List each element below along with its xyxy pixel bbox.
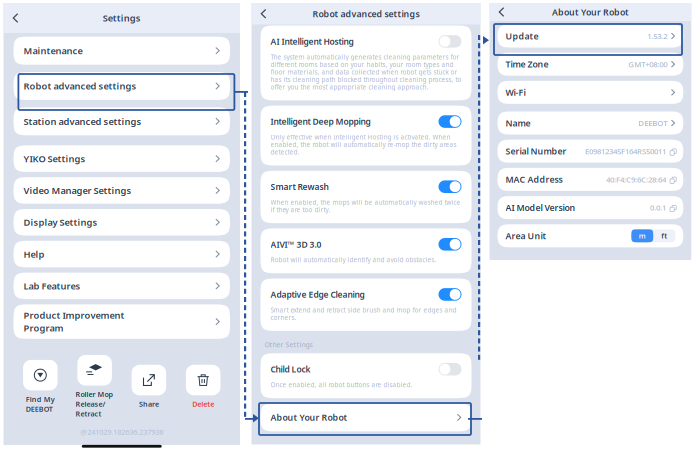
- button[interactable]: Child Lock: [438, 363, 461, 375]
- staticText: E09812345F164RS50011: [585, 146, 666, 156]
- staticText: AI Model Version: [505, 202, 575, 214]
- staticText: MAC Address: [505, 173, 562, 185]
- button[interactable]: Lab Features: [13, 273, 230, 299]
- staticText: DEEBOT: [638, 118, 667, 128]
- staticText: 40:F4:C9:6C:28:64: [606, 174, 666, 185]
- button[interactable]: Intelligent Deep Mopping: [438, 115, 461, 128]
- button[interactable]: Time Zone: [497, 53, 683, 76]
- button[interactable]: Share: [122, 365, 176, 409]
- button[interactable]: AIVI™ 3D 3.0: [438, 238, 461, 251]
- button[interactable]: Update: [497, 24, 683, 47]
- staticText: Maintenance: [23, 44, 82, 57]
- staticText: 0.0.1: [650, 202, 666, 213]
- button[interactable]: YIKO Settings: [13, 145, 230, 172]
- staticText: Delete: [192, 399, 214, 409]
- staticText: 1.53.2: [647, 31, 667, 41]
- staticText: Station advanced settings: [23, 115, 141, 128]
- staticText: Settings: [103, 12, 141, 24]
- button[interactable]: Back: [489, 2, 513, 22]
- button[interactable]: Product Improvement Program: [13, 304, 230, 339]
- staticText: Update: [505, 30, 538, 42]
- staticText: Robot advanced settings: [23, 80, 136, 92]
- staticText: About Your Robot: [270, 411, 347, 423]
- staticText: Video Manager Settings: [23, 184, 131, 197]
- staticText: AIVI™ 3D 3.0: [270, 238, 321, 250]
- staticText: YIKO Settings: [23, 152, 85, 165]
- staticText: Help: [23, 248, 44, 260]
- staticText: AI Intelligent Hosting: [270, 36, 353, 47]
- button[interactable]: Find My DEEBOT: [13, 360, 67, 414]
- button[interactable]: Wi-Fi: [497, 81, 683, 104]
- staticText: When enabled, the mops will be automatic…: [270, 198, 460, 213]
- staticText: Share: [139, 399, 159, 409]
- staticText: Robot will automatically identify and av…: [270, 256, 436, 264]
- staticText: Child Lock: [270, 363, 310, 375]
- staticText: About Your Robot: [552, 6, 629, 18]
- button[interactable]: MAC Address: [497, 168, 683, 191]
- button[interactable]: ft: [653, 229, 675, 242]
- button[interactable]: Name: [497, 111, 683, 134]
- button[interactable]: About Your Robot: [260, 403, 471, 431]
- staticText: Name: [505, 117, 530, 129]
- staticText: Only effective when Intelligent Hosting …: [270, 133, 456, 156]
- staticText: ft: [661, 231, 667, 241]
- staticText: Other Settings: [264, 340, 312, 349]
- staticText: Adaptive Edge Cleaning: [270, 289, 364, 300]
- button[interactable]: Back: [3, 8, 27, 28]
- staticText: m: [639, 231, 646, 241]
- button[interactable]: Roller Mop Release/Retract: [67, 355, 122, 419]
- staticText: @241029.182636.237938: [80, 427, 163, 437]
- button[interactable]: Station advanced settings: [13, 107, 230, 135]
- button[interactable]: Delete: [176, 365, 230, 409]
- button[interactable]: Help: [13, 241, 230, 267]
- staticText: Product Improvement Program: [23, 309, 124, 334]
- button[interactable]: Video Manager Settings: [13, 177, 230, 204]
- staticText: Time Zone: [505, 58, 548, 70]
- staticText: Smart extend and retract side brush and …: [270, 306, 456, 321]
- staticText: Once enabled, all robot buttons are disa…: [270, 381, 412, 388]
- staticText: Serial Number: [505, 145, 566, 157]
- button[interactable]: Robot advanced settings: [13, 72, 230, 100]
- staticText: GMT+08:00: [628, 59, 667, 69]
- staticText: Robot advanced settings: [312, 8, 419, 20]
- staticText: Lab Features: [23, 279, 80, 292]
- staticText: Smart Rewash: [270, 181, 328, 192]
- button[interactable]: Smart Rewash: [438, 180, 461, 193]
- button[interactable]: Serial Number: [497, 140, 683, 163]
- staticText: Area Unit: [505, 230, 546, 242]
- button[interactable]: Maintenance: [13, 37, 230, 65]
- button[interactable]: AI Intelligent Hosting: [438, 35, 461, 48]
- button[interactable]: Adaptive Edge Cleaning: [438, 288, 461, 301]
- button[interactable]: Back: [251, 4, 275, 24]
- staticText: Wi-Fi: [505, 86, 525, 98]
- button[interactable]: Display Settings: [13, 209, 230, 235]
- staticText: Intelligent Deep Mopping: [270, 116, 370, 127]
- staticText: Find My DEEBOT: [26, 394, 55, 414]
- staticText: Display Settings: [23, 216, 97, 229]
- staticText: The system automatically generates clean…: [270, 53, 461, 91]
- button[interactable]: m: [631, 229, 653, 242]
- staticText: Roller Mop Release/Retract: [76, 389, 114, 419]
- button[interactable]: AI Model Version: [497, 196, 683, 219]
